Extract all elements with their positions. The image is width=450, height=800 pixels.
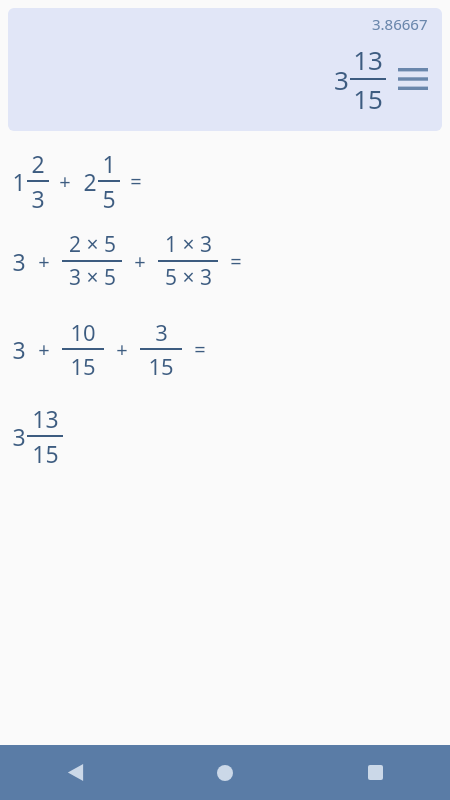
- staticText: 3: [155, 317, 168, 347]
- staticText: +: [134, 248, 146, 275]
- staticText: 3: [12, 421, 26, 452]
- staticText: +: [38, 336, 50, 363]
- staticText: 5 × 3: [165, 263, 212, 292]
- staticText: 15: [353, 81, 383, 116]
- staticText: 1 × 3: [165, 230, 212, 259]
- staticText: 3: [12, 334, 26, 365]
- staticText: +: [116, 336, 128, 363]
- staticText: +: [38, 248, 50, 275]
- staticText: =: [194, 336, 206, 363]
- staticText: 3.86667: [372, 14, 428, 34]
- staticText: =: [130, 168, 142, 195]
- button[interactable]: Home: [150, 745, 300, 800]
- staticText: 2 × 5: [69, 230, 116, 259]
- staticText: =: [230, 248, 242, 275]
- staticText: 3: [31, 183, 45, 214]
- staticText: 15: [32, 438, 59, 469]
- button[interactable]: Menu: [396, 62, 430, 96]
- staticText: 10: [70, 317, 96, 347]
- staticText: 1: [12, 166, 26, 197]
- staticText: 13: [32, 403, 59, 434]
- staticText: 5: [102, 183, 116, 214]
- staticText: 2: [83, 166, 97, 197]
- staticText: 15: [70, 351, 96, 381]
- button[interactable]: Back: [0, 745, 150, 800]
- staticText: 1: [102, 148, 116, 179]
- staticText: 2: [31, 148, 45, 179]
- button[interactable]: Recent apps: [300, 745, 450, 800]
- staticText: 3 × 5: [69, 263, 116, 292]
- staticText: 3: [334, 62, 349, 97]
- staticText: 3: [12, 246, 26, 277]
- staticText: +: [59, 168, 71, 195]
- staticText: 15: [148, 351, 174, 381]
- button[interactable]: 3.86667: [8, 8, 442, 131]
- staticText: 13: [353, 42, 383, 77]
